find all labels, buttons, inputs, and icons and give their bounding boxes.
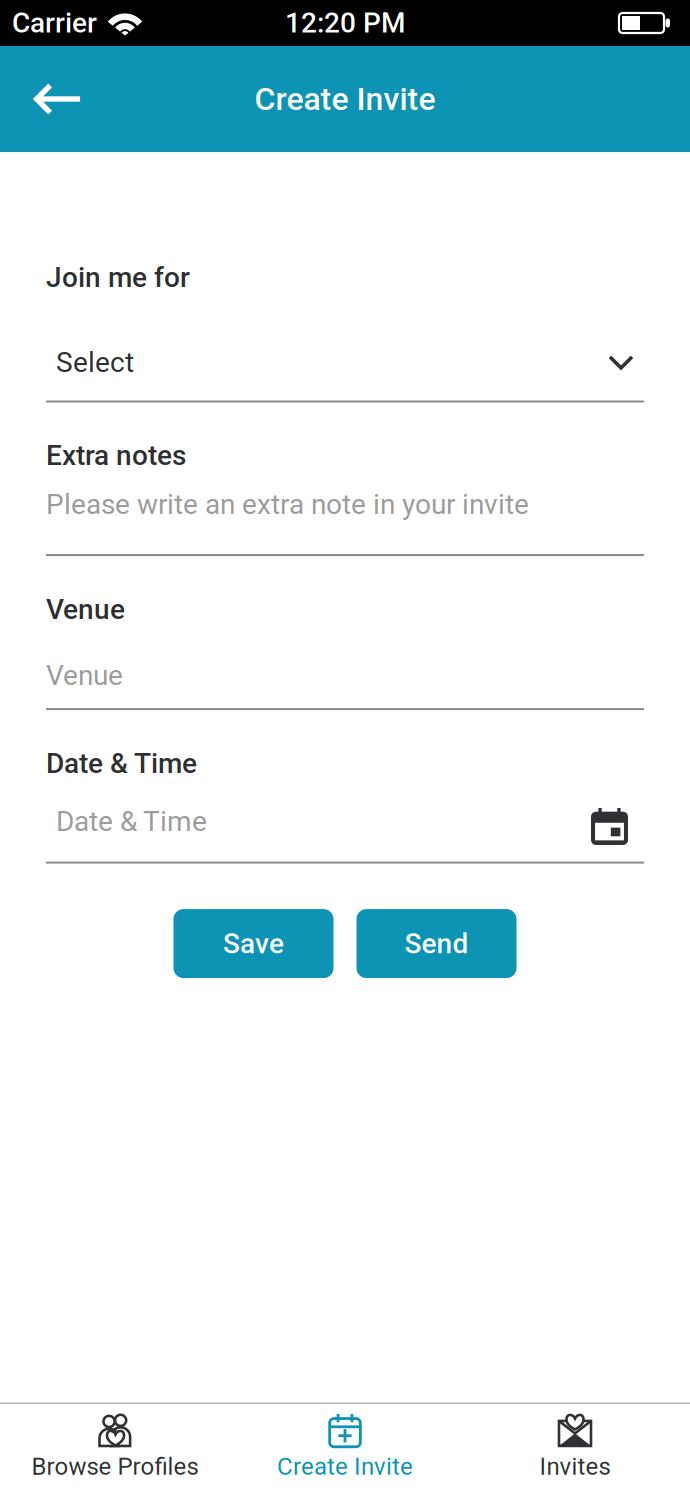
staticText: Venue <box>46 659 123 692</box>
staticText: Create Invite <box>277 1452 413 1480</box>
staticText: Carrier <box>12 7 97 39</box>
button[interactable]: Invites <box>460 1404 690 1492</box>
staticText: Date & Time <box>46 747 197 780</box>
staticText: Select <box>56 346 134 379</box>
button[interactable]: Save <box>173 909 333 978</box>
staticText: Date & Time <box>56 805 207 838</box>
button[interactable]: Back <box>0 48 106 150</box>
staticText: Venue <box>46 593 125 626</box>
staticText: Invites <box>539 1452 610 1480</box>
staticText: 12:20 PM <box>285 7 405 39</box>
button[interactable]: Create Invite <box>230 1404 460 1492</box>
staticText: Send <box>404 927 468 960</box>
staticText: Browse Profiles <box>31 1452 198 1480</box>
staticText: Extra notes <box>46 439 186 472</box>
staticText: Please write an extra note in your invit… <box>46 488 529 521</box>
staticText: Join me for <box>46 261 190 294</box>
button[interactable]: Browse Profiles <box>0 1404 230 1492</box>
button[interactable]: Send <box>356 909 516 978</box>
staticText: Save <box>223 927 284 960</box>
staticText: Create Invite <box>254 80 435 118</box>
